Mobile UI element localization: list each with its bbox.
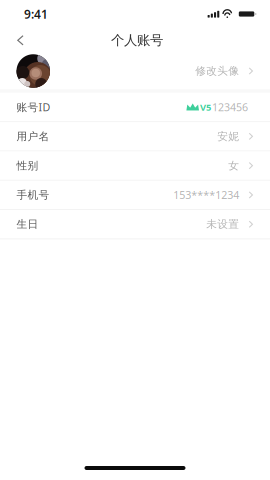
staticText: 手机号	[16, 188, 49, 201]
button[interactable]: 手机号	[0, 181, 270, 210]
staticText: V5	[200, 101, 211, 113]
staticText: 安妮	[217, 130, 239, 143]
button[interactable]: Back	[8, 28, 32, 52]
staticText: 账号ID	[16, 100, 50, 114]
button[interactable]: 账号ID	[0, 93, 270, 122]
staticText: 153****1234	[173, 188, 239, 202]
staticText: 性别	[16, 159, 38, 172]
staticText: 用户名	[16, 130, 49, 143]
staticText: 123456	[212, 100, 248, 114]
staticText: 女	[228, 159, 239, 172]
staticText: 生日	[16, 218, 38, 231]
button[interactable]: 用户名	[0, 122, 270, 151]
staticText: 未设置	[206, 218, 239, 231]
staticText: 修改头像	[195, 64, 239, 77]
button[interactable]: 生日	[0, 210, 270, 239]
button[interactable]: 性别	[0, 151, 270, 181]
staticText: 9:41	[24, 6, 48, 22]
button[interactable]: 修改头像	[0, 53, 270, 89]
staticText: 个人账号	[111, 32, 163, 49]
